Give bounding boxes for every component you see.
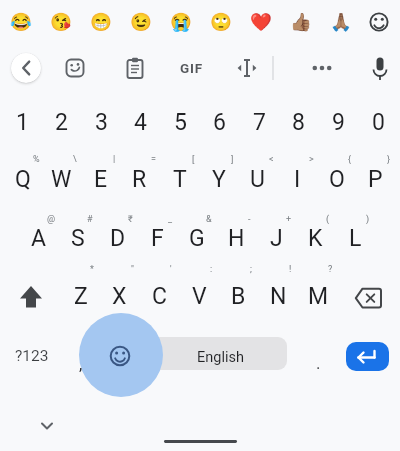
button[interactable]: 😂 [1, 1, 40, 43]
button[interactable]: H [217, 213, 256, 263]
staticText: 2 [55, 109, 68, 136]
staticText: ( [326, 214, 330, 225]
button[interactable]: 1 [3, 97, 42, 147]
staticText: + [286, 214, 292, 225]
button[interactable]: W [42, 154, 81, 204]
staticText: N [270, 283, 287, 310]
button[interactable]: 😉 [121, 1, 160, 43]
staticText: X [112, 283, 127, 310]
staticText: A [31, 225, 47, 252]
button[interactable] [306, 54, 338, 82]
staticText: 1 [16, 109, 29, 136]
button[interactable]: N [259, 271, 298, 321]
staticText: D [110, 225, 126, 252]
staticText: 😂 [10, 12, 32, 33]
button[interactable] [346, 273, 390, 323]
button[interactable]: R [120, 154, 159, 204]
button[interactable]: I [278, 154, 317, 204]
button[interactable]: E [81, 154, 120, 204]
staticText: U [250, 166, 265, 193]
button[interactable]: M [299, 271, 338, 321]
button[interactable]: 😁 [81, 1, 120, 43]
button[interactable] [346, 342, 389, 371]
button[interactable] [79, 313, 163, 397]
staticText: P [368, 166, 383, 193]
staticText: > [309, 154, 314, 165]
button[interactable]: P [356, 154, 395, 204]
button[interactable]: 0 [359, 97, 398, 147]
staticText: L [349, 225, 362, 252]
button[interactable]: ?123 [9, 336, 55, 376]
button[interactable]: G [177, 213, 216, 263]
button[interactable]: Q [3, 154, 42, 204]
staticText: * [90, 264, 94, 275]
staticText: 4 [134, 109, 147, 136]
staticText: 🙄 [210, 12, 232, 33]
staticText: 👍🏽 [290, 12, 312, 33]
staticText: V [192, 283, 207, 310]
button[interactable] [35, 416, 59, 436]
button[interactable]: B [219, 271, 258, 321]
button[interactable]: K [296, 213, 335, 263]
button[interactable]: U [238, 154, 277, 204]
button[interactable]: 7 [240, 97, 279, 147]
staticText: % [33, 154, 40, 165]
button[interactable]: Y [199, 154, 238, 204]
button[interactable] [61, 54, 89, 82]
staticText: T [173, 166, 187, 193]
staticText: { [348, 154, 352, 165]
button[interactable]: . [306, 343, 330, 383]
button[interactable]: 2 [42, 97, 81, 147]
staticText: O [329, 166, 345, 193]
button[interactable]: 4 [121, 97, 160, 147]
staticText: [ [192, 154, 195, 165]
button[interactable]: GIF [169, 53, 213, 83]
staticText: _ [168, 214, 173, 225]
button[interactable] [147, 337, 287, 370]
button[interactable]: 👍🏽 [281, 1, 320, 43]
staticText: 8 [292, 109, 305, 136]
staticText: 9 [332, 109, 345, 136]
button[interactable]: 😘 [41, 1, 80, 43]
button[interactable]: D [98, 213, 137, 263]
button[interactable]: J [257, 213, 296, 263]
button[interactable] [9, 271, 53, 321]
staticText: W [51, 166, 72, 193]
button[interactable]: 8 [279, 97, 318, 147]
button[interactable]: 🙄 [201, 1, 240, 43]
button[interactable] [365, 53, 395, 83]
staticText: 0 [372, 109, 385, 136]
button[interactable] [121, 54, 149, 82]
button[interactable]: ❤️ [241, 1, 280, 43]
button[interactable]: L [336, 213, 375, 263]
staticText: , [79, 354, 83, 374]
staticText: = [151, 154, 156, 165]
button[interactable]: 3 [82, 97, 121, 147]
button[interactable]: F [138, 213, 177, 263]
button[interactable]: V [180, 271, 219, 321]
button[interactable]: X [100, 271, 139, 321]
button[interactable] [366, 9, 392, 35]
button[interactable]: 😭 [161, 1, 200, 43]
button[interactable]: A [19, 213, 58, 263]
button[interactable]: O [317, 154, 356, 204]
button[interactable]: C [140, 271, 179, 321]
button[interactable]: Z [61, 271, 100, 321]
button[interactable]: T [160, 154, 199, 204]
button[interactable]: 6 [200, 97, 239, 147]
staticText: B [231, 283, 246, 310]
staticText: ? [328, 264, 333, 275]
staticText: ?123 [15, 347, 49, 365]
staticText: | [113, 154, 116, 165]
staticText: S [71, 225, 85, 252]
button[interactable] [11, 53, 41, 83]
button[interactable] [232, 54, 262, 82]
button[interactable]: 5 [161, 97, 200, 147]
staticText: < [269, 154, 274, 165]
staticText: - [248, 214, 251, 225]
button[interactable]: S [58, 213, 97, 263]
button[interactable]: 9 [319, 97, 358, 147]
button[interactable]: 🙏🏽 [321, 1, 360, 43]
button[interactable]: , [69, 344, 93, 384]
staticText: E [94, 166, 108, 193]
